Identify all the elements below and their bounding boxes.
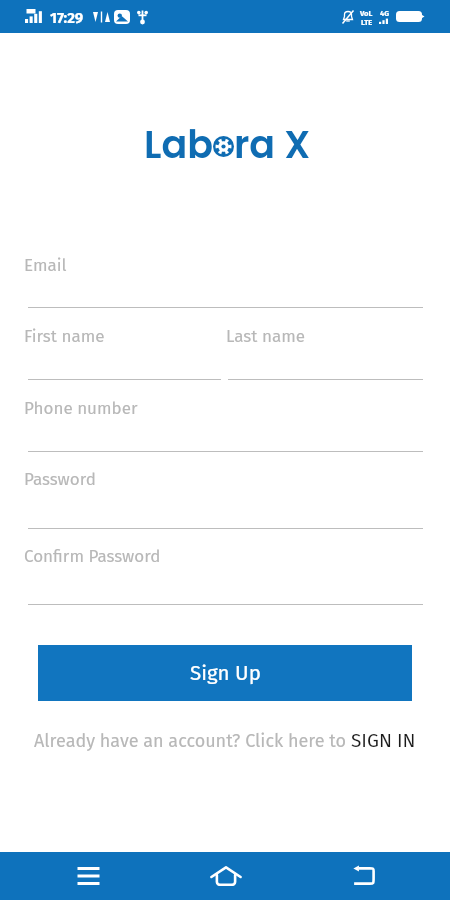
staticText: Password (24, 469, 96, 489)
button[interactable]: Sign Up (38, 645, 412, 701)
staticText: Last name (226, 326, 305, 346)
button[interactable]: Home (202, 858, 250, 894)
staticText: 4G (380, 9, 390, 18)
staticText: Lab (144, 118, 213, 171)
staticText: First name (24, 326, 105, 346)
staticText: ra X (234, 118, 311, 171)
button[interactable]: SIGN IN (351, 729, 416, 752)
staticText: Phone number (24, 398, 138, 418)
staticText: Sign Up (190, 661, 261, 686)
staticText: Already have an account? Click here to (34, 730, 351, 752)
button[interactable]: Back (339, 858, 387, 894)
staticText: VoL (360, 9, 373, 18)
staticText: LTE (361, 18, 373, 27)
staticText: 17:29 (50, 9, 84, 27)
staticText: Email (24, 255, 67, 275)
button[interactable]: Menu (64, 858, 112, 894)
staticText: Confirm Password (24, 546, 161, 566)
